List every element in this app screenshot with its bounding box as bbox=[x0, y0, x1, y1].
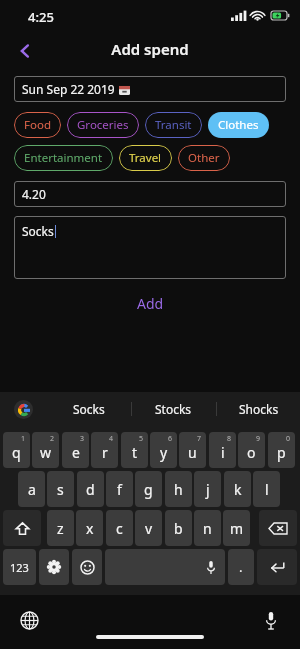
staticText: v bbox=[145, 519, 153, 538]
button[interactable]: e bbox=[62, 432, 89, 468]
staticText: q bbox=[12, 443, 21, 462]
staticText: 1 bbox=[21, 434, 26, 444]
button[interactable]: Settings bbox=[39, 549, 69, 585]
staticText: Add bbox=[137, 294, 164, 313]
button[interactable]: Socks bbox=[14, 216, 286, 279]
staticText: z bbox=[57, 519, 64, 538]
staticText: j bbox=[206, 480, 210, 499]
staticText: f bbox=[117, 480, 122, 499]
button[interactable]: Backspace bbox=[259, 510, 297, 546]
button[interactable]: m bbox=[223, 510, 250, 546]
button[interactable]: k bbox=[224, 471, 251, 507]
staticText: 3 bbox=[80, 434, 85, 444]
button[interactable]: t bbox=[121, 432, 148, 468]
staticText: k bbox=[234, 480, 242, 499]
staticText: e bbox=[72, 443, 80, 462]
staticText: x bbox=[86, 519, 94, 538]
staticText: 4 bbox=[109, 434, 114, 444]
button[interactable]: z bbox=[47, 510, 74, 546]
button[interactable]: j bbox=[194, 471, 221, 507]
button[interactable]: b bbox=[165, 510, 192, 546]
button[interactable]: Groceries bbox=[67, 112, 139, 138]
staticText: t bbox=[132, 443, 138, 462]
button[interactable]: Space bbox=[105, 549, 225, 585]
button[interactable]: g bbox=[135, 471, 162, 507]
staticText: m bbox=[230, 519, 244, 538]
button[interactable]: p bbox=[268, 432, 295, 468]
staticText: r bbox=[102, 443, 108, 462]
button[interactable]: . bbox=[228, 549, 254, 585]
button[interactable]: Entertainment bbox=[14, 145, 113, 171]
staticText: Sun Sep 22 2019 bbox=[22, 81, 115, 97]
staticText: Add spend bbox=[0, 39, 300, 59]
staticText: 0 bbox=[286, 434, 291, 444]
button[interactable]: Back bbox=[8, 34, 42, 68]
staticText: Stocks bbox=[155, 401, 192, 417]
button[interactable]: Socks bbox=[46, 392, 131, 426]
button[interactable]: Shocks bbox=[216, 392, 300, 426]
staticText: Travel bbox=[129, 150, 162, 166]
button[interactable]: Shift bbox=[3, 510, 41, 546]
staticText: 123 bbox=[10, 560, 29, 575]
button[interactable]: i bbox=[209, 432, 236, 468]
button[interactable]: Change language bbox=[14, 605, 44, 635]
staticText: Transit bbox=[155, 117, 192, 133]
button[interactable]: Other bbox=[178, 145, 230, 171]
button[interactable]: Transit bbox=[145, 112, 202, 138]
button[interactable]: Enter bbox=[257, 549, 297, 585]
button[interactable]: 123 bbox=[3, 549, 36, 585]
staticText: 4:25 bbox=[28, 8, 54, 26]
staticText: y bbox=[160, 443, 168, 462]
button[interactable]: w bbox=[32, 432, 59, 468]
staticText: Entertainment bbox=[24, 150, 103, 166]
button[interactable]: Stocks bbox=[131, 392, 216, 426]
button[interactable]: x bbox=[76, 510, 103, 546]
staticText: Shocks bbox=[239, 401, 279, 417]
staticText: Socks bbox=[73, 401, 105, 417]
button[interactable]: Google search bbox=[14, 400, 33, 419]
button[interactable]: Travel bbox=[119, 145, 172, 171]
staticText: 8 bbox=[227, 434, 232, 444]
staticText: 6 bbox=[168, 434, 173, 444]
staticText: w bbox=[40, 443, 52, 462]
staticText: Groceries bbox=[77, 117, 129, 133]
staticText: 4.20 bbox=[22, 186, 46, 202]
button[interactable]: o bbox=[238, 432, 265, 468]
button[interactable]: Sun Sep 22 2019 bbox=[14, 76, 286, 102]
button[interactable]: h bbox=[165, 471, 192, 507]
staticText: s bbox=[57, 480, 64, 499]
button[interactable]: f bbox=[106, 471, 133, 507]
staticText: 9 bbox=[256, 434, 261, 444]
button[interactable]: Add bbox=[0, 291, 300, 315]
staticText: o bbox=[247, 443, 256, 462]
button[interactable]: s bbox=[47, 471, 74, 507]
button[interactable]: a bbox=[18, 471, 45, 507]
button[interactable]: Emoji bbox=[72, 549, 102, 585]
button[interactable]: q bbox=[3, 432, 30, 468]
staticText: Other bbox=[188, 150, 220, 166]
button[interactable]: Clothes bbox=[208, 112, 269, 138]
button[interactable]: d bbox=[77, 471, 104, 507]
button[interactable]: u bbox=[179, 432, 206, 468]
staticText: Clothes bbox=[218, 117, 259, 133]
staticText: Socks bbox=[22, 223, 54, 239]
staticText: h bbox=[174, 480, 183, 499]
staticText: n bbox=[203, 519, 212, 538]
button[interactable]: y bbox=[150, 432, 177, 468]
staticText: 5 bbox=[139, 434, 144, 444]
button[interactable]: v bbox=[135, 510, 162, 546]
button[interactable]: Food bbox=[14, 112, 61, 138]
staticText: d bbox=[86, 480, 95, 499]
button[interactable]: Voice input bbox=[256, 605, 286, 635]
staticText: g bbox=[144, 480, 153, 499]
staticText: . bbox=[239, 558, 243, 576]
button[interactable]: r bbox=[91, 432, 118, 468]
button[interactable]: c bbox=[106, 510, 133, 546]
staticText: 2 bbox=[50, 434, 55, 444]
staticText: p bbox=[277, 443, 286, 462]
staticText: 7 bbox=[197, 434, 202, 444]
staticText: b bbox=[174, 519, 183, 538]
button[interactable]: n bbox=[194, 510, 221, 546]
button[interactable]: 4.20 bbox=[14, 181, 286, 207]
button[interactable]: l bbox=[253, 471, 280, 507]
